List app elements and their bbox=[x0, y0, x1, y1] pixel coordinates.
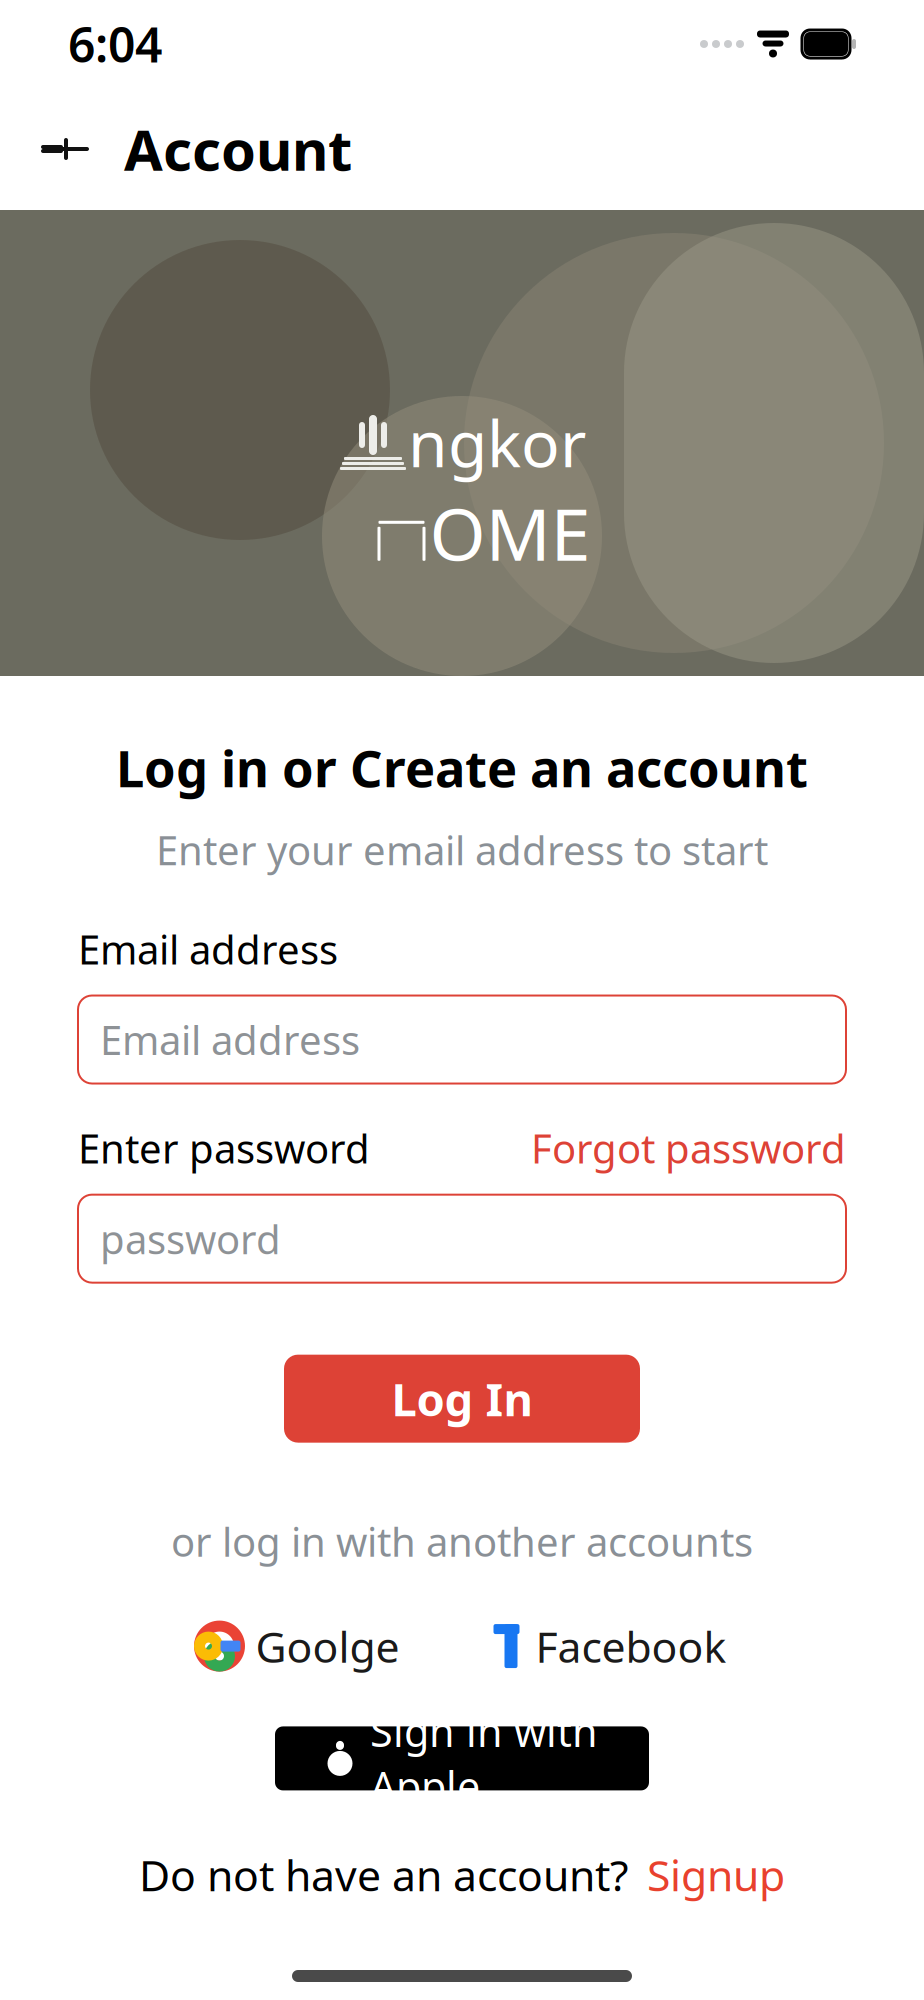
staticText: ngkor bbox=[408, 400, 586, 485]
button[interactable]: Sign in with Apple bbox=[275, 1726, 649, 1790]
staticText: Log in or Create an account bbox=[116, 734, 808, 801]
button[interactable]: Facebook bbox=[481, 1610, 736, 1682]
staticText: Facebook bbox=[535, 1618, 726, 1674]
button[interactable]: Signup bbox=[647, 1846, 785, 1903]
staticText: Do not have an account? bbox=[139, 1846, 629, 1903]
staticText: Goolge bbox=[255, 1618, 399, 1674]
button[interactable]: Back bbox=[28, 111, 104, 187]
staticText: OME bbox=[429, 485, 590, 581]
staticText: Enter password bbox=[78, 1121, 370, 1175]
staticText: Email address bbox=[100, 1013, 360, 1066]
button[interactable]: Goolge bbox=[187, 1610, 409, 1682]
staticText: Enter your email address to start bbox=[156, 823, 768, 876]
staticText: Log In bbox=[391, 1368, 532, 1429]
staticText: or log in with another accounts bbox=[171, 1515, 753, 1568]
staticText: password bbox=[100, 1212, 281, 1265]
staticText: 6:04 bbox=[68, 12, 162, 76]
staticText: Signup bbox=[647, 1846, 785, 1903]
staticText: Email address bbox=[78, 922, 338, 975]
staticText: Account bbox=[124, 112, 352, 186]
button[interactable]: Log In bbox=[284, 1355, 640, 1443]
staticText: Forgot password bbox=[531, 1121, 846, 1175]
staticText: Sign in with Apple bbox=[370, 1703, 598, 1813]
button[interactable]: Forgot password bbox=[531, 1121, 846, 1175]
